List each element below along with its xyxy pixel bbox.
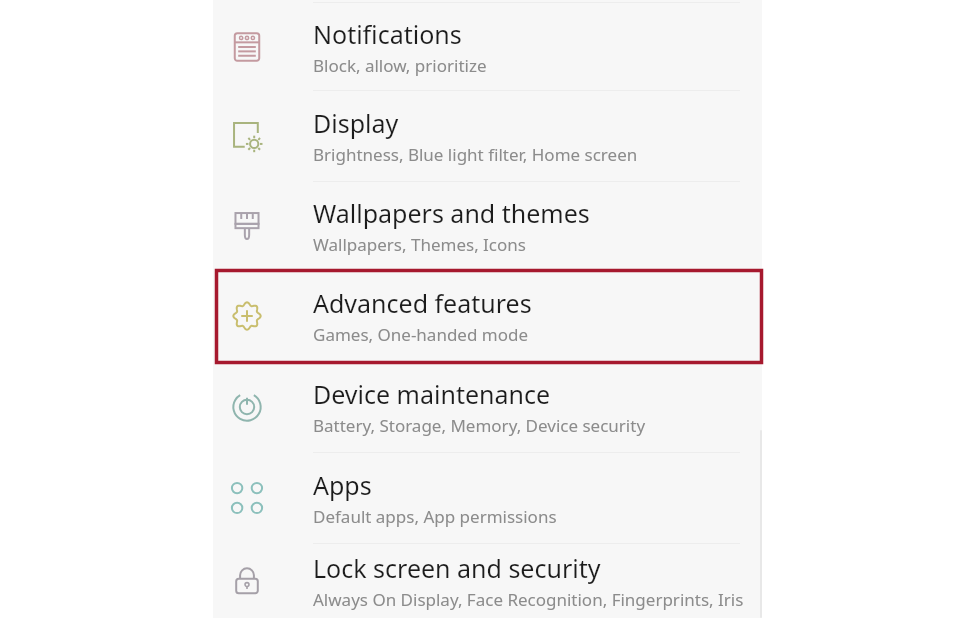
other: Lock screen and security (229, 563, 265, 599)
button[interactable]: Display (213, 90, 762, 181)
staticText: Wallpapers and themes (313, 196, 590, 230)
button[interactable]: Lock screen and security (213, 543, 762, 618)
button[interactable]: Apps (213, 452, 762, 543)
staticText: Battery, Storage, Memory, Device securit… (313, 414, 646, 437)
staticText: Block, allow, prioritize (313, 54, 487, 77)
other: Notifications (229, 29, 265, 65)
button[interactable]: Device maintenance (213, 361, 762, 452)
staticText: Device maintenance (313, 377, 551, 411)
staticText: Games, One-handed mode (313, 323, 529, 346)
staticText: Display (313, 106, 399, 140)
other: Apps (229, 480, 265, 516)
other: Display (229, 118, 265, 154)
staticText: Advanced features (313, 286, 532, 320)
other: Wallpapers and themes (229, 208, 265, 244)
staticText: Apps (313, 468, 372, 502)
staticText: Lock screen and security (313, 551, 601, 585)
other: Device maintenance (229, 389, 265, 425)
button[interactable]: Advanced features (213, 271, 762, 361)
staticText: Brightness, Blue light filter, Home scre… (313, 143, 638, 166)
staticText: Wallpapers, Themes, Icons (313, 233, 526, 256)
button[interactable]: Notifications (213, 4, 762, 90)
staticText: Always On Display, Face Recognition, Fin… (313, 588, 744, 611)
staticText: Default apps, App permissions (313, 505, 557, 528)
button[interactable]: Wallpapers and themes (213, 181, 762, 271)
other: Advanced features (229, 298, 265, 334)
staticText: Notifications (313, 17, 462, 51)
